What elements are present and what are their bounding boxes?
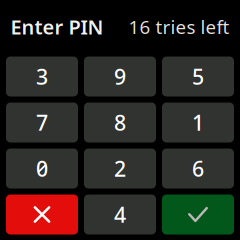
staticText: 9 — [114, 62, 126, 91]
staticText: 6 — [192, 154, 204, 183]
button[interactable]: 4 — [84, 194, 156, 234]
button[interactable]: 9 — [84, 56, 156, 96]
button[interactable]: 0 — [6, 148, 78, 188]
staticText: 2 — [114, 154, 126, 183]
staticText: 3 — [36, 62, 48, 91]
button[interactable]: 2 — [84, 148, 156, 188]
staticText: 1 — [192, 108, 204, 137]
staticText: 4 — [114, 200, 126, 229]
button[interactable]: 8 — [84, 102, 156, 142]
staticText: 5 — [192, 62, 204, 91]
button[interactable]: Confirm — [162, 194, 234, 234]
button[interactable]: 7 — [6, 102, 78, 142]
staticText: Enter PIN — [10, 13, 103, 40]
button[interactable]: 5 — [162, 56, 234, 96]
button[interactable]: 1 — [162, 102, 234, 142]
staticText: 8 — [114, 108, 126, 137]
button[interactable]: 3 — [6, 56, 78, 96]
button[interactable]: Cancel — [6, 194, 78, 234]
button[interactable]: 6 — [162, 148, 234, 188]
staticText: 7 — [36, 108, 48, 137]
staticText: 16 tries left — [128, 14, 229, 39]
staticText: 0 — [36, 154, 48, 183]
